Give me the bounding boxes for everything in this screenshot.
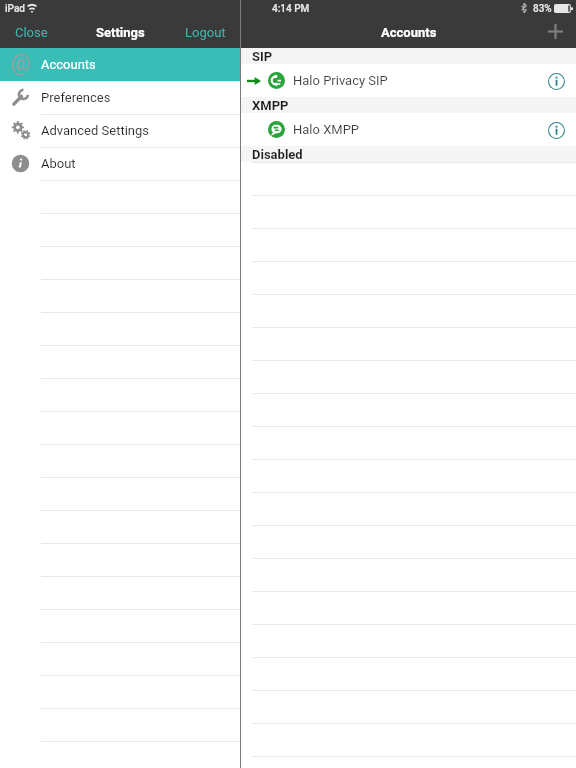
staticText: Logout [185, 25, 226, 40]
staticText: Halo Privacy SIP [293, 73, 388, 88]
button[interactable]: Account info [543, 117, 569, 143]
staticText: @ [11, 50, 31, 76]
staticText: 83% [533, 3, 552, 15]
button[interactable]: About [0, 147, 240, 180]
staticText: iPad [5, 3, 25, 15]
staticText: SIP [252, 49, 273, 64]
button[interactable]: Add account [541, 18, 569, 46]
staticText: XMPP [252, 98, 289, 113]
staticText: Halo XMPP [293, 122, 360, 137]
staticText: Accounts [381, 25, 437, 40]
button[interactable]: Close [10, 20, 53, 45]
staticText: Advanced Settings [41, 123, 149, 138]
button[interactable]: Halo Privacy SIP [241, 64, 576, 97]
staticText: 4:14 PM [272, 3, 310, 15]
staticText: Preferences [41, 90, 111, 105]
button[interactable]: Halo XMPP [241, 113, 576, 146]
button[interactable]: @ [0, 48, 240, 81]
button[interactable]: Account info [543, 68, 569, 94]
staticText: Close [15, 25, 48, 40]
staticText: Accounts [41, 57, 96, 72]
staticText: About [41, 156, 76, 171]
button[interactable]: Preferences [0, 81, 240, 114]
staticText: Disabled [252, 147, 303, 162]
staticText: Settings [96, 25, 145, 40]
button[interactable]: Logout [180, 20, 231, 45]
button[interactable]: Advanced Settings [0, 114, 240, 147]
